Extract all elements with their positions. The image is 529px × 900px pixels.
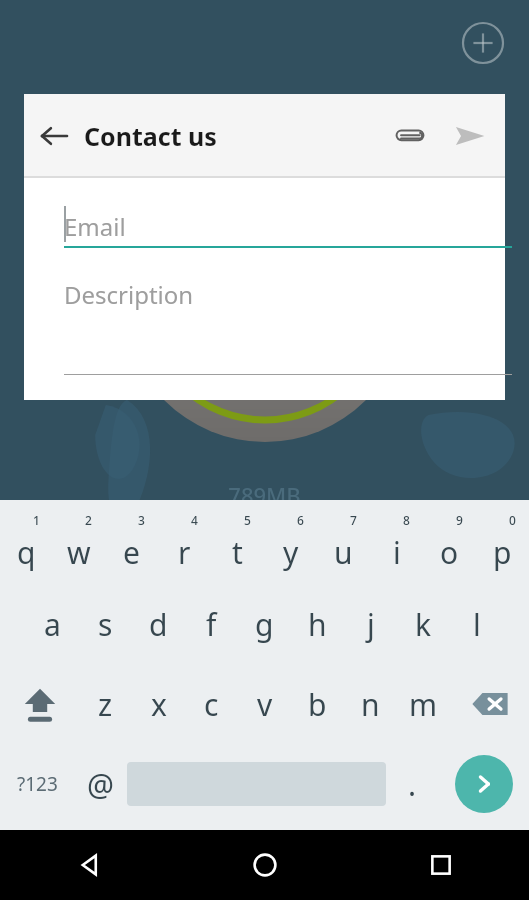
staticText: o (440, 532, 459, 573)
staticText: Description (64, 278, 194, 311)
button[interactable]: Add (460, 20, 506, 66)
button[interactable]: 6 (264, 508, 317, 584)
button[interactable]: 9 (423, 508, 476, 584)
button[interactable]: 1 (0, 508, 52, 584)
button[interactable]: ?123 (0, 744, 74, 824)
button[interactable]: d (132, 584, 185, 664)
staticText: a (44, 604, 61, 645)
staticText: 6 (297, 512, 304, 528)
staticText: 7 (350, 512, 357, 528)
button[interactable]: Recent apps (353, 830, 529, 900)
staticText: ?123 (17, 771, 58, 797)
button[interactable]: m (397, 664, 450, 744)
button[interactable]: n (344, 664, 397, 744)
staticText: m (409, 684, 438, 725)
staticText: Email (64, 210, 126, 243)
button[interactable]: k (397, 584, 450, 664)
button[interactable]: b (291, 664, 344, 744)
button[interactable]: 7 (317, 508, 370, 584)
staticText: 4 (191, 512, 198, 528)
staticText: x (151, 684, 167, 725)
button[interactable]: Send (439, 105, 501, 167)
staticText: b (308, 684, 327, 725)
staticText: y (283, 532, 299, 573)
staticText: 8 (403, 512, 410, 528)
staticText: . (408, 764, 417, 805)
button[interactable]: z (79, 664, 132, 744)
button[interactable]: Back (24, 106, 84, 166)
button[interactable]: 2 (52, 508, 105, 584)
button[interactable]: h (291, 584, 344, 664)
staticText: w (67, 532, 91, 573)
staticText: l (473, 604, 481, 645)
staticText: g (255, 604, 274, 645)
staticText: 9 (456, 512, 463, 528)
staticText: c (204, 684, 219, 725)
staticText: p (493, 532, 512, 573)
button[interactable]: c (185, 664, 238, 744)
button[interactable]: v (238, 664, 291, 744)
staticText: e (123, 532, 140, 573)
staticText: d (149, 604, 168, 645)
staticText: v (257, 684, 273, 725)
staticText: r (178, 532, 191, 573)
button[interactable]: 4 (158, 508, 211, 584)
staticText: 5 (244, 512, 251, 528)
button[interactable]: 5 (211, 508, 264, 584)
button[interactable]: . (386, 744, 439, 824)
button[interactable]: 8 (370, 508, 423, 584)
button[interactable]: 3 (105, 508, 158, 584)
button[interactable]: l (450, 584, 503, 664)
button[interactable]: Enter (439, 744, 529, 824)
staticText: n (361, 684, 380, 725)
button[interactable]: g (238, 584, 291, 664)
button[interactable]: 0 (476, 508, 529, 584)
button[interactable]: x (132, 664, 185, 744)
staticText: 3 (138, 512, 145, 528)
staticText: 2 (85, 512, 92, 528)
button[interactable]: Backspace (450, 664, 529, 744)
staticText: k (415, 604, 432, 645)
staticText: 1 (33, 512, 40, 528)
staticText: s (98, 604, 113, 645)
staticText: Contact us (84, 119, 217, 153)
staticText: i (393, 532, 401, 573)
button[interactable]: Attach (381, 107, 439, 165)
staticText: 789MB (0, 480, 529, 510)
button[interactable]: f (185, 584, 238, 664)
staticText: 0 (509, 512, 516, 528)
staticText: q (17, 532, 36, 573)
staticText: j (367, 604, 375, 645)
button[interactable]: Back (0, 830, 177, 900)
staticText: z (98, 684, 113, 725)
button[interactable]: j (344, 584, 397, 664)
staticText: t (232, 532, 243, 573)
button[interactable]: @ (74, 744, 127, 824)
button[interactable]: Shift (0, 664, 79, 744)
staticText: f (206, 604, 217, 645)
staticText: h (308, 604, 327, 645)
button[interactable]: a (26, 584, 79, 664)
button[interactable]: s (79, 584, 132, 664)
staticText: @ (87, 764, 114, 805)
staticText: u (334, 532, 353, 573)
button[interactable]: Home (177, 830, 353, 900)
